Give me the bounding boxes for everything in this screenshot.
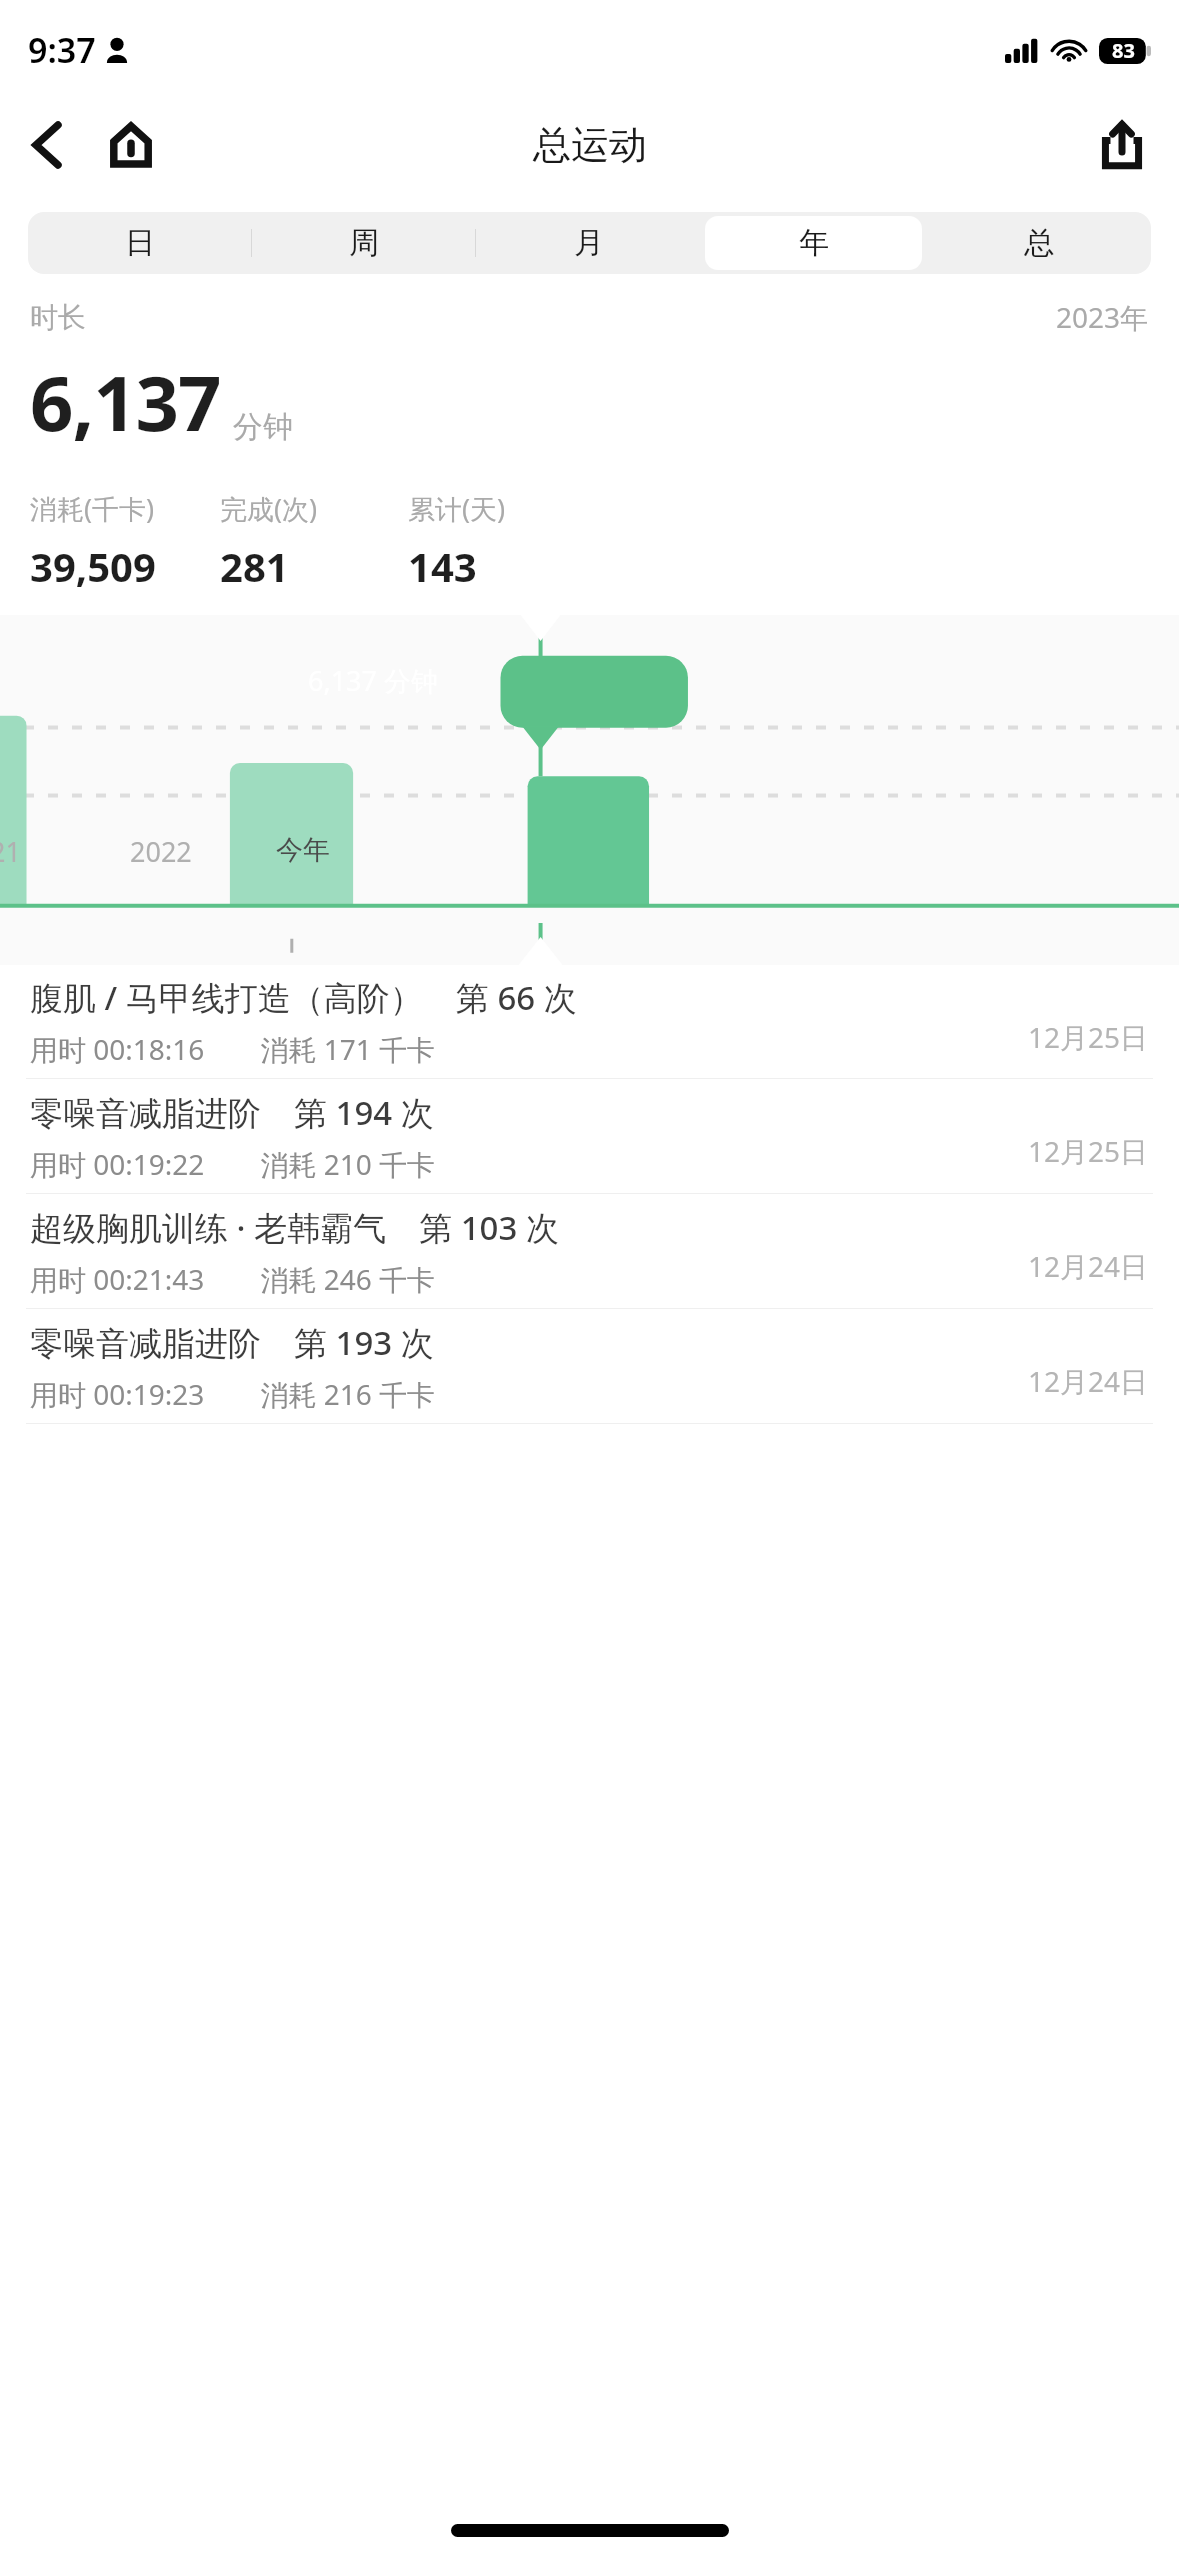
button[interactable]: 年 [705,216,922,270]
staticText: 用时 00:21:43 消耗 246 千卡 [30,1260,435,1298]
button[interactable]: 零噪音减脂进阶 第 194 次 [0,1079,1179,1193]
staticText: 12月24日 [1028,1362,1149,1400]
button[interactable]: 超级胸肌训练 · 老韩霸气 第 103 次 [0,1194,1179,1308]
staticText: 累计(天) [408,490,506,527]
staticText: 12月25日 [1028,1018,1149,1056]
staticText: 83 [1112,37,1135,64]
staticText: 6,137 [30,350,221,454]
button[interactable]: 零噪音减脂进阶 第 193 次 [0,1309,1179,1423]
staticText: 零噪音减脂进阶 第 193 次 [30,1320,434,1365]
staticText: 281 [220,539,289,593]
staticText: 用时 00:19:22 消耗 210 千卡 [30,1145,435,1183]
staticText: 零噪音减脂进阶 第 194 次 [30,1090,434,1135]
button[interactable]: Back [16,114,78,176]
staticText: 12月25日 [1028,1132,1149,1170]
staticText: 腹肌 / 马甲线打造（高阶） 第 66 次 [30,975,577,1020]
button[interactable]: 总 [930,216,1147,270]
staticText: 9:37 [28,27,96,73]
button[interactable]: Home [100,114,162,176]
staticText: 用时 00:18:16 消耗 171 千卡 [30,1030,435,1068]
staticText: 39,509 [30,539,156,593]
staticText: 总运动 [533,121,647,169]
staticText: 143 [408,539,477,593]
staticText: 超级胸肌训练 · 老韩霸气 第 103 次 [30,1205,559,1250]
staticText: 2022 [130,833,192,870]
staticText: 用时 00:19:23 消耗 216 千卡 [30,1375,435,1413]
button[interactable]: 腹肌 / 马甲线打造（高阶） 第 66 次 [0,965,1179,1078]
staticText: 2023年 [1056,298,1149,336]
staticText: 周 [349,224,379,262]
staticText: 完成(次) [220,490,318,527]
button[interactable]: 月 [480,216,697,270]
staticText: 月 [574,224,604,262]
staticText: 今年 [276,833,330,867]
button[interactable]: 周 [256,216,472,270]
staticText: 年 [799,224,829,262]
button[interactable]: Share [1091,114,1153,176]
staticText: 12月24日 [1028,1247,1149,1285]
staticText: 时长 [30,300,86,335]
button[interactable]: 日 [32,216,248,270]
staticText: 21 [0,833,21,870]
staticText: 消耗(千卡) [30,490,155,527]
staticText: 日 [125,224,155,262]
staticText: 分钟 [233,408,293,446]
staticText: 总 [1024,224,1054,262]
